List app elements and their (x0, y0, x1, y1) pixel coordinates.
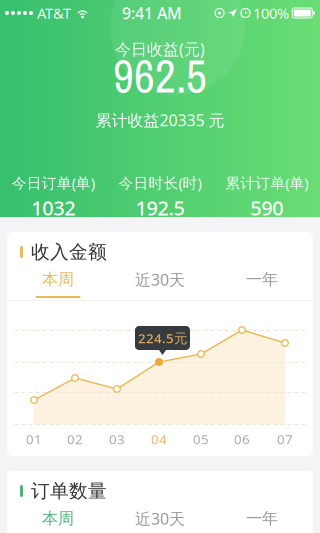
staticText: 06 (234, 430, 250, 448)
staticText: 07 (277, 430, 293, 448)
staticText: 一年 (246, 509, 278, 528)
staticText: 收入金额 (31, 240, 107, 263)
staticText: 590 (250, 194, 283, 221)
staticText: 本周 (42, 270, 74, 289)
staticText: 订单数量 (31, 479, 107, 502)
staticText: 224.5元 (138, 329, 187, 347)
staticText: 02 (67, 430, 83, 448)
staticText: 近30天 (135, 508, 185, 529)
staticText: AT&T (37, 3, 71, 23)
button[interactable]: 一年 (211, 511, 313, 533)
staticText: 962.5 (113, 45, 207, 107)
staticText: 100% (253, 3, 289, 23)
button[interactable]: 近30天 (109, 511, 211, 533)
staticText: 今日订单(单) (12, 173, 95, 192)
button[interactable]: 本周 (7, 272, 109, 298)
staticText: 一年 (246, 270, 278, 289)
button[interactable]: 一年 (211, 272, 313, 298)
button[interactable]: 近30天 (109, 272, 211, 298)
staticText: 9:41 AM (122, 2, 182, 24)
staticText: 04 (151, 430, 167, 448)
staticText: 今日收益(元) (115, 38, 205, 60)
staticText: 05 (193, 430, 209, 448)
staticText: 今日时长(时) (118, 173, 201, 192)
staticText: 1032 (31, 194, 75, 221)
staticText: 累计收益20335 元 (95, 109, 224, 131)
staticText: 累计订单(单) (225, 173, 308, 192)
staticText: 01 (26, 430, 42, 448)
button[interactable]: 本周 (7, 511, 109, 533)
staticText: 近30天 (135, 269, 185, 290)
staticText: 03 (109, 430, 125, 448)
staticText: 192.5 (135, 194, 184, 221)
staticText: 本周 (42, 509, 74, 528)
